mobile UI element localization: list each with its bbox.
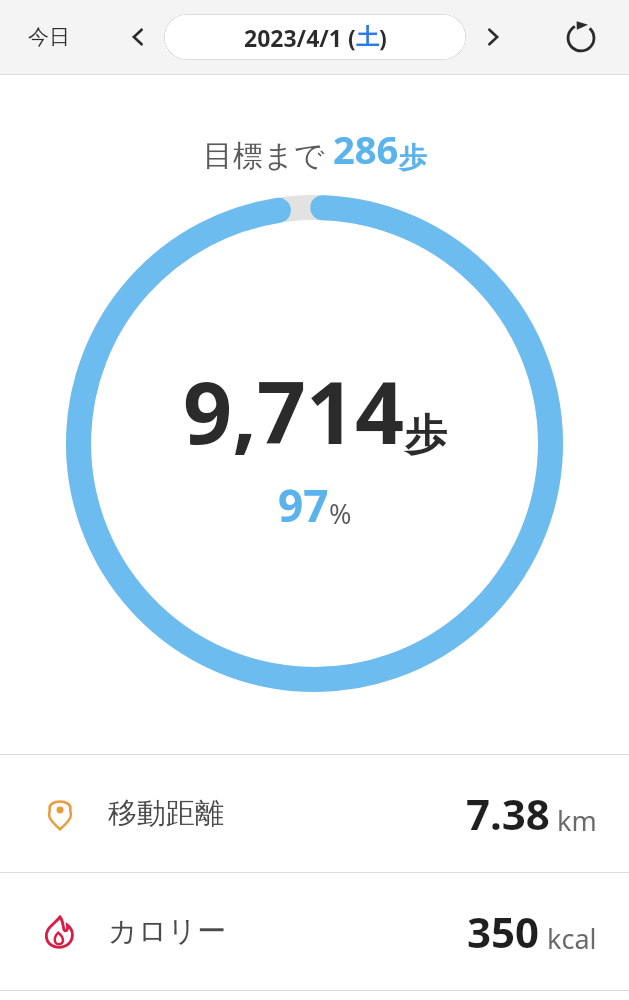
- staticText: 今日: [28, 24, 70, 50]
- staticText: km: [557, 802, 597, 839]
- button[interactable]: Next day: [473, 17, 513, 57]
- staticText: 97: [278, 475, 329, 535]
- staticText: 歩: [405, 409, 447, 462]
- staticText: 9,714: [183, 352, 405, 469]
- staticText: 2023/4/1 (: [244, 22, 356, 53]
- button[interactable]: カロリー: [0, 873, 629, 990]
- button[interactable]: 2023/4/1 (: [164, 14, 466, 60]
- button[interactable]: Previous day: [118, 17, 158, 57]
- staticText: ): [379, 22, 387, 53]
- staticText: 土: [356, 23, 379, 52]
- button[interactable]: 今日: [20, 16, 78, 58]
- button[interactable]: 移動距離: [0, 755, 629, 872]
- button[interactable]: Refresh: [559, 15, 603, 59]
- staticText: 286: [333, 123, 399, 175]
- staticText: 7.38: [466, 785, 550, 842]
- staticText: %: [329, 495, 352, 532]
- staticText: 350: [467, 903, 540, 960]
- staticText: カロリー: [108, 913, 227, 950]
- staticText: 移動距離: [108, 795, 224, 832]
- staticText: 歩: [399, 140, 427, 175]
- staticText: 目標まで: [203, 137, 325, 175]
- staticText: kcal: [547, 920, 597, 957]
